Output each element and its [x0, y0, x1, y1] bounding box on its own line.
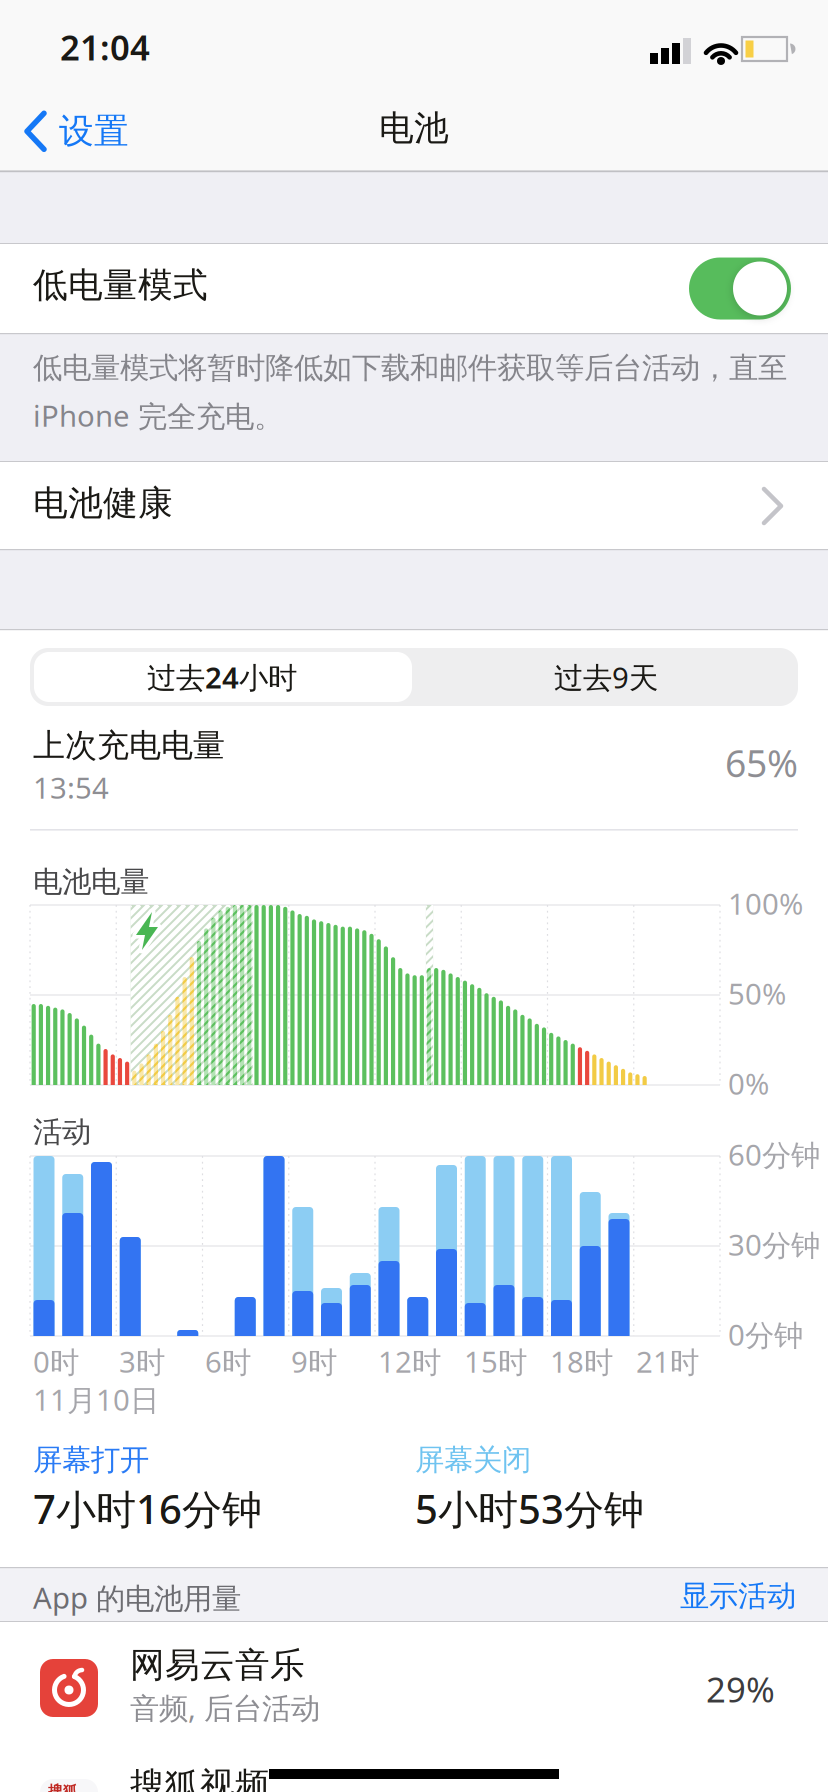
staticText: 30分钟: [728, 1225, 820, 1264]
button[interactable]: 电池健康: [0, 462, 828, 549]
staticText: 低电量模式: [33, 264, 208, 307]
staticText: 18时: [550, 1342, 613, 1381]
staticText: 电池电量: [33, 864, 149, 900]
button[interactable]: 低电量模式: [0, 244, 828, 333]
staticText: 29%: [706, 1666, 775, 1712]
staticText: 搜狐: [48, 1782, 78, 1792]
button[interactable]: 显示活动: [680, 1578, 796, 1614]
staticText: 网易云音乐: [130, 1644, 305, 1687]
staticText: iPhone 完全充电。: [33, 396, 283, 435]
staticText: 电池: [379, 107, 449, 150]
staticText: 设置: [59, 110, 129, 153]
staticText: 音频, 后台活动: [130, 1688, 320, 1727]
staticText: 显示活动: [680, 1578, 796, 1614]
button[interactable]: 设置: [24, 110, 129, 153]
staticText: 低电量模式将暂时降低如下载和邮件获取等后台活动，直至: [33, 350, 787, 386]
staticText: 上次充电电量: [33, 726, 225, 765]
staticText: 12时: [378, 1342, 441, 1381]
staticText: 65%: [725, 738, 798, 788]
staticText: 3时: [119, 1342, 165, 1381]
staticText: 活动: [33, 1114, 91, 1150]
staticText: 搜狐视频: [130, 1764, 270, 1792]
button[interactable]: 过去24小时: [30, 648, 414, 706]
staticText: 100%: [728, 884, 803, 923]
button[interactable]: 搜狐: [0, 1748, 828, 1792]
staticText: 15时: [464, 1342, 527, 1381]
staticText: App 的电池用量: [33, 1578, 241, 1617]
staticText: 13:54: [33, 768, 109, 807]
staticText: 21时: [636, 1342, 699, 1381]
staticText: 过去9天: [554, 657, 658, 696]
staticText: 屏幕打开: [33, 1442, 149, 1478]
staticText: 21:04: [60, 24, 150, 70]
button[interactable]: 网易云音乐: [0, 1622, 828, 1748]
staticText: 0%: [728, 1064, 769, 1103]
staticText: 电池健康: [33, 482, 173, 525]
button[interactable]: 过去9天: [414, 648, 798, 706]
staticText: 9时: [291, 1342, 337, 1381]
staticText: 7小时16分钟: [33, 1482, 262, 1535]
staticText: 11月10日: [33, 1380, 159, 1419]
staticText: 0时: [33, 1342, 79, 1381]
staticText: 5小时53分钟: [415, 1482, 644, 1535]
staticText: 60分钟: [728, 1135, 820, 1174]
staticText: 50%: [728, 974, 786, 1013]
staticText: 0分钟: [728, 1315, 803, 1354]
staticText: 屏幕关闭: [415, 1442, 531, 1478]
staticText: 过去24小时: [147, 657, 297, 696]
staticText: 6时: [205, 1342, 251, 1381]
